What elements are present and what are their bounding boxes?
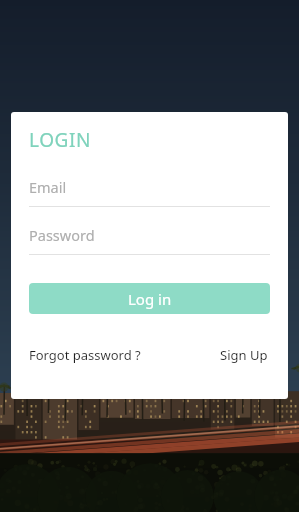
staticText: Forgot password ? [29, 346, 141, 364]
staticText: Sign Up [220, 346, 268, 364]
button[interactable]: Sign Up [220, 344, 268, 366]
button[interactable]: Forgot password ? [29, 344, 141, 366]
button[interactable]: Email [29, 174, 270, 207]
staticText: Email [29, 177, 67, 197]
staticText: Password [29, 225, 95, 245]
staticText: Log in [128, 289, 172, 309]
staticText: LOGIN [29, 127, 92, 153]
button[interactable]: Password [29, 222, 270, 255]
button[interactable]: Log in [29, 283, 270, 314]
